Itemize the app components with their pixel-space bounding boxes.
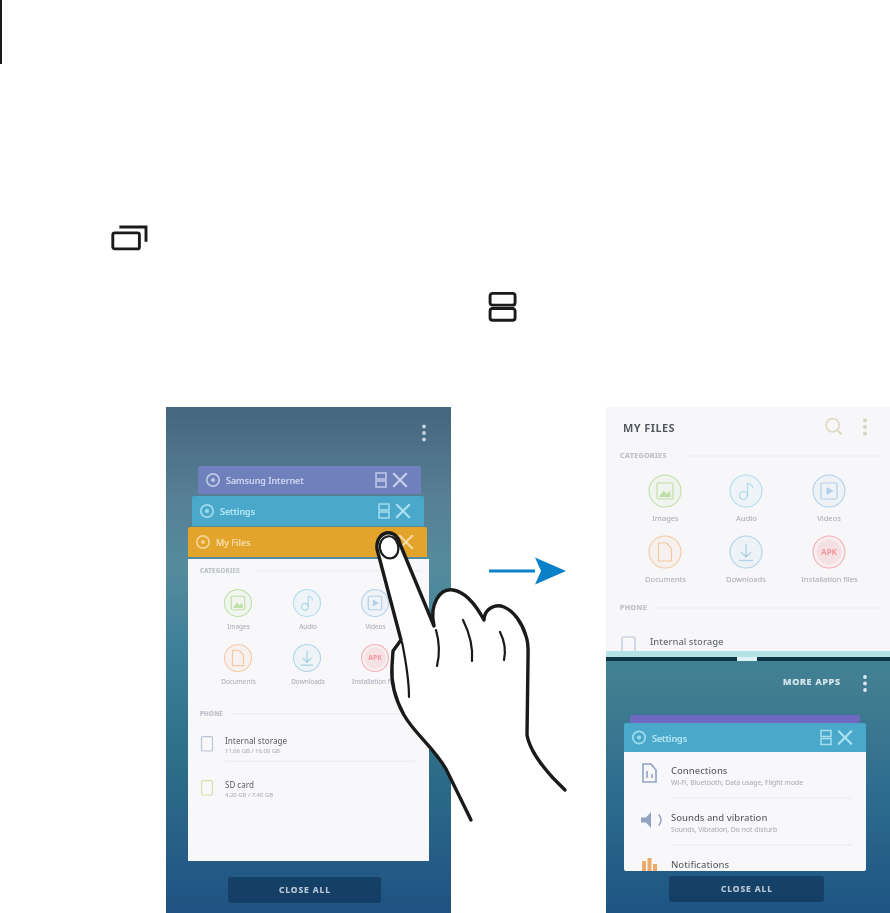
staticText: Samsung Internet [226,474,304,486]
button[interactable]: More options [857,416,873,438]
staticText: Images [652,513,679,523]
button[interactable]: Settings [192,496,424,526]
button[interactable]: Audio [272,622,343,631]
staticText: Videos [365,622,386,631]
staticText: Documents [221,677,256,686]
staticText: MY FILES [623,420,676,435]
staticText: Audio [736,513,757,523]
staticText: PHONE [620,602,648,612]
button[interactable]: MORE APPS [783,675,841,687]
staticText: MORE APPS [783,675,841,687]
staticText: Internal storage [225,735,288,746]
staticText: Installation files [352,677,400,686]
button[interactable]: More options [857,672,873,695]
staticText: Sounds and vibration [671,811,768,824]
button[interactable]: Settings [624,723,866,752]
button[interactable]: Audio [704,513,788,523]
button[interactable]: Installation files [787,574,871,584]
staticText: 11.06 GB / 16.00 GB [650,649,715,653]
button[interactable]: Images [203,622,274,631]
button[interactable]: Downloads [272,677,343,686]
button[interactable]: Images [623,513,707,523]
button[interactable]: Videos [787,513,871,523]
staticText: 11.06 GB / 16.00 GB [225,747,280,755]
staticText: Documents [645,574,686,584]
staticText: Videos [817,513,841,523]
staticText: 4.20 GB / 7.40 GB [225,791,274,799]
button[interactable]: Split screen view [486,290,520,324]
button[interactable]: CLOSE ALL [669,876,824,902]
staticText: CATEGORIES [620,450,667,460]
staticText: PHONE [200,709,224,717]
staticText: Connections [671,764,728,777]
staticText: Settings [652,732,688,744]
staticText: Sounds, Vibration, Do not disturb [671,825,778,834]
button[interactable]: My Files [188,527,427,557]
button[interactable]: More options [416,422,432,444]
button[interactable]: Documents [623,574,707,584]
button[interactable] [630,715,860,725]
staticText: Audio [299,622,317,631]
button[interactable]: Documents [203,677,274,686]
staticText: Wi-Fi, Bluetooth, Data usage, Flight mod… [671,778,804,787]
staticText: Images [227,622,250,631]
staticText: SD card [225,779,255,790]
button[interactable]: Downloads [704,574,788,584]
button[interactable]: Recents [111,222,151,254]
button[interactable]: CLOSE ALL [228,877,381,903]
button[interactable]: Installation files [340,677,411,686]
staticText: Internal storage [650,635,724,648]
button[interactable]: Search [823,416,845,438]
staticText: Settings [220,505,256,517]
staticText: APK [368,653,382,662]
staticText: CLOSE ALL [279,884,331,896]
staticText: CLOSE ALL [721,883,773,895]
staticText: Installation files [801,574,858,584]
staticText: My Files [216,536,251,548]
button[interactable]: Samsung Internet [198,466,421,494]
staticText: Downloads [291,677,325,686]
staticText: Notifications [671,858,730,871]
staticText: Downloads [726,574,766,584]
button[interactable]: Videos [340,622,411,631]
staticText: CATEGORIES [200,566,240,574]
staticText: APK [821,546,837,557]
